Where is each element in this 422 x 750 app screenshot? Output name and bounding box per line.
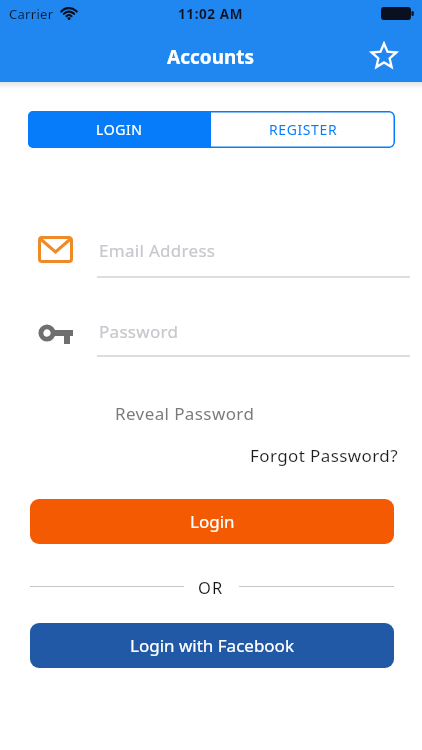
button[interactable]: LOGIN bbox=[28, 111, 211, 148]
staticText: Reveal Password bbox=[115, 402, 255, 425]
button[interactable]: Forgot Password? bbox=[250, 444, 398, 467]
button[interactable]: Login with Facebook bbox=[30, 623, 394, 668]
staticText: 11:02 AM bbox=[178, 5, 244, 23]
staticText: Login bbox=[190, 510, 235, 533]
button[interactable]: Reveal Password bbox=[115, 402, 255, 425]
button[interactable]: REGISTER bbox=[211, 111, 395, 148]
staticText: Email Address bbox=[99, 239, 216, 262]
staticText: REGISTER bbox=[269, 120, 338, 139]
staticText: Accounts bbox=[167, 44, 255, 70]
staticText: Login with Facebook bbox=[130, 634, 294, 657]
staticText: OR bbox=[198, 576, 224, 598]
staticText: Forgot Password? bbox=[250, 444, 398, 467]
button[interactable]: Login bbox=[30, 499, 394, 544]
staticText: LOGIN bbox=[96, 120, 143, 139]
staticText: Password bbox=[99, 320, 179, 343]
staticText: Carrier bbox=[9, 5, 54, 23]
button[interactable] bbox=[369, 40, 399, 70]
